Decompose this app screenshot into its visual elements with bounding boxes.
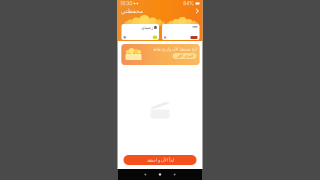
button[interactable]: رصيدي bbox=[121, 24, 159, 40]
staticText: 84% bbox=[183, 1, 194, 6]
button[interactable]: Back bbox=[144, 174, 146, 175]
button[interactable]: اعرف أكثر bbox=[172, 53, 196, 59]
button[interactable] bbox=[162, 24, 199, 40]
staticText: ابدأ الآن و استفد bbox=[146, 157, 173, 163]
staticText: اعرف أكثر bbox=[176, 54, 192, 58]
button[interactable]: ادع صديقك الآن واربح نقاط bbox=[121, 44, 199, 65]
button[interactable]: ابدأ الآن و استفد bbox=[123, 155, 196, 165]
staticText: محفظتي bbox=[120, 8, 142, 14]
button[interactable]: Recents bbox=[174, 174, 175, 175]
staticText: ادع صديقك الآن واربح نقاط bbox=[152, 47, 196, 51]
staticText: 10:30 bbox=[120, 1, 132, 6]
button[interactable]: More bbox=[195, 8, 199, 14]
staticText: رصيدي bbox=[141, 25, 153, 30]
button[interactable]: Home bbox=[159, 173, 161, 176]
